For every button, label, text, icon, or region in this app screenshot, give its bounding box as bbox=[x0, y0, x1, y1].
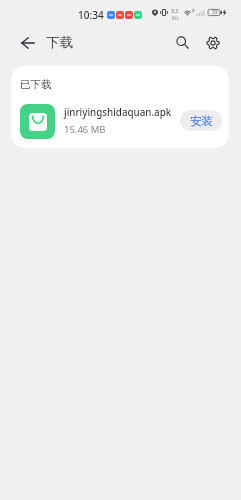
staticText: 10:34 bbox=[78, 8, 104, 22]
staticText: 安装 bbox=[190, 114, 213, 128]
staticText: 3.3 bbox=[171, 8, 179, 15]
staticText: K/s bbox=[172, 15, 179, 21]
staticText: x bbox=[192, 7, 195, 14]
button[interactable]: Settings bbox=[198, 28, 227, 57]
button[interactable]: jinriyingshidaquan.apk bbox=[11, 97, 229, 143]
staticText: 已下载 bbox=[20, 78, 52, 91]
button[interactable]: Search bbox=[168, 28, 197, 57]
button[interactable]: 安装 bbox=[180, 110, 222, 131]
staticText: 15.46 MB bbox=[64, 123, 106, 136]
button[interactable]: Back bbox=[13, 28, 42, 57]
staticText: jinriyingshidaquan.apk bbox=[64, 106, 172, 119]
staticText: 33 bbox=[212, 9, 218, 16]
staticText: 下载 bbox=[46, 34, 73, 51]
